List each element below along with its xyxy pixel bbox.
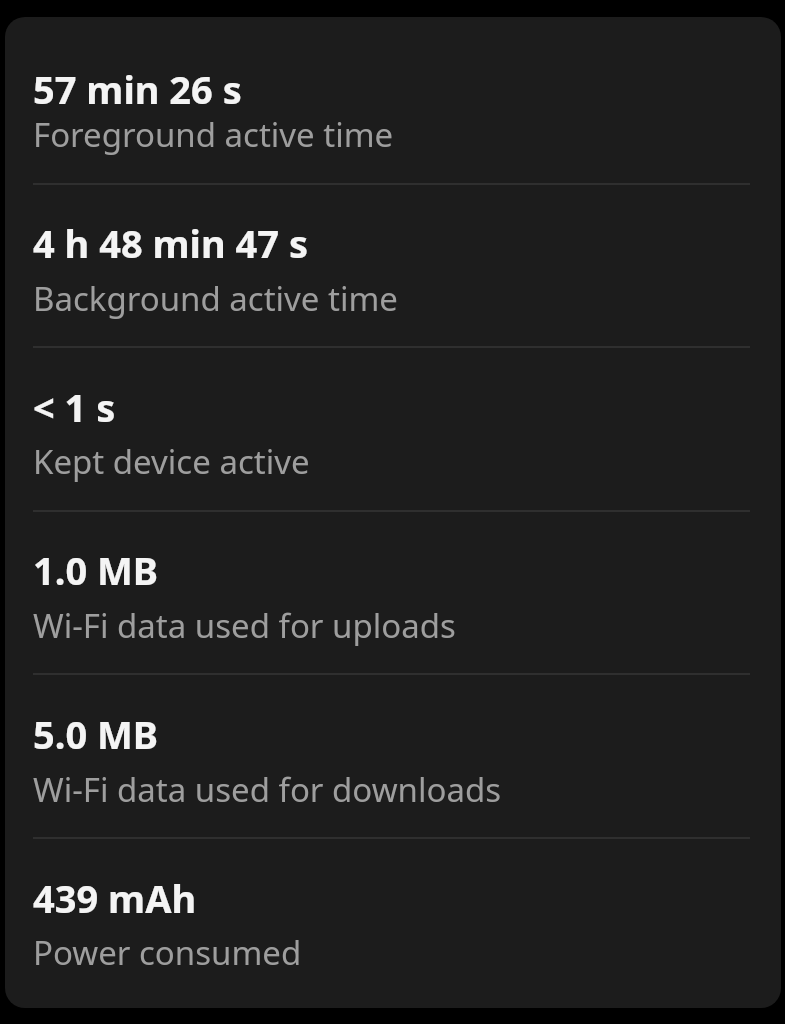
button[interactable]: 5.0 MB xyxy=(5,674,781,838)
staticText: 4 h 48 min 47 s xyxy=(33,217,308,269)
staticText: Wi-Fi data used for uploads xyxy=(33,603,456,648)
button[interactable]: < 1 s xyxy=(5,347,781,511)
staticText: Power consumed xyxy=(33,930,302,975)
button[interactable]: 1.0 MB xyxy=(5,511,781,674)
staticText: Wi-Fi data used for downloads xyxy=(33,767,502,812)
staticText: < 1 s xyxy=(33,381,116,433)
staticText: 1.0 MB xyxy=(33,544,159,596)
staticText: Kept device active xyxy=(33,439,310,484)
staticText: 439 mAh xyxy=(33,872,197,924)
button[interactable]: 439 mAh xyxy=(5,838,781,1008)
staticText: Background active time xyxy=(33,276,398,321)
staticText: Foreground active time xyxy=(33,112,394,157)
staticText: 57 min 26 s xyxy=(33,63,242,115)
button[interactable]: 4 h 48 min 47 s xyxy=(5,184,781,347)
button[interactable]: 57 min 26 s xyxy=(5,17,781,184)
staticText: 5.0 MB xyxy=(33,708,159,760)
